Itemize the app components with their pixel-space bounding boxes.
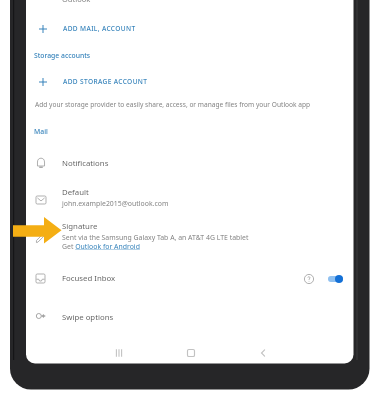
staticText: Swipe options bbox=[62, 312, 114, 323]
staticText: Outlook bbox=[62, 0, 91, 4]
staticText: Default bbox=[62, 187, 89, 198]
button[interactable]: Mail bbox=[26, 122, 354, 140]
button[interactable]: Back bbox=[254, 344, 272, 362]
staticText: Mail bbox=[34, 127, 48, 136]
button[interactable]: Storage accounts bbox=[26, 46, 354, 64]
button[interactable]: Signature bbox=[26, 216, 354, 249]
button[interactable]: Notifications bbox=[26, 153, 354, 186]
button[interactable]: Swipe options bbox=[26, 307, 354, 340]
button[interactable]: Recents bbox=[110, 344, 128, 362]
staticText: Add your storage provider to easily shar… bbox=[35, 100, 311, 109]
button[interactable]: ADD STORAGE ACCOUNT bbox=[26, 68, 354, 94]
button[interactable]: ADD MAIL, ACCOUNT bbox=[26, 15, 354, 41]
staticText: john.example2015@outlook.com bbox=[62, 199, 169, 208]
button[interactable]: Focused Inbox toggle bbox=[328, 275, 343, 283]
staticText: ADD STORAGE ACCOUNT bbox=[63, 77, 148, 86]
staticText: ADD MAIL, ACCOUNT bbox=[63, 24, 136, 33]
staticText: Signature bbox=[62, 221, 98, 232]
staticText: Notifications bbox=[62, 158, 109, 169]
button[interactable]: Help bbox=[302, 272, 316, 286]
staticText: Get Outlook for Android bbox=[62, 242, 140, 251]
staticText: Focused Inbox bbox=[62, 273, 116, 284]
button[interactable]: Add your storage provider to easily shar… bbox=[35, 100, 311, 109]
staticText: Storage accounts bbox=[34, 51, 91, 60]
button[interactable]: Home bbox=[182, 344, 200, 362]
button[interactable]: Default bbox=[26, 182, 354, 215]
button[interactable]: Focused Inbox bbox=[26, 262, 354, 295]
staticText: Sent via the Samsung Galaxy Tab A, an AT… bbox=[62, 233, 249, 242]
